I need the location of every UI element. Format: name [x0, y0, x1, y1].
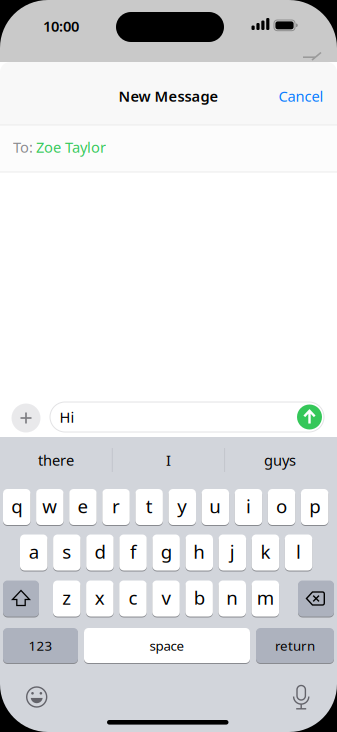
- staticText: f: [130, 539, 136, 564]
- staticText: 123: [28, 637, 52, 654]
- staticText: Hi: [59, 407, 74, 427]
- staticText: j: [230, 539, 235, 564]
- staticText: space: [149, 637, 184, 654]
- staticText: u: [209, 494, 221, 518]
- staticText: t: [146, 494, 153, 518]
- staticText: m: [257, 585, 274, 610]
- staticText: New Message: [118, 86, 218, 106]
- staticText: o: [276, 494, 287, 518]
- staticText: z: [62, 585, 71, 610]
- staticText: a: [29, 539, 39, 564]
- staticText: n: [226, 585, 238, 610]
- staticText: x: [95, 585, 105, 610]
- staticText: k: [260, 539, 270, 564]
- staticText: q: [11, 494, 22, 518]
- staticText: i: [246, 494, 251, 518]
- staticText: return: [275, 637, 315, 654]
- staticText: c: [128, 585, 137, 610]
- staticText: e: [77, 494, 88, 518]
- staticText: Zoe Taylor: [36, 137, 106, 157]
- staticText: w: [42, 494, 57, 518]
- staticText: I: [166, 450, 171, 470]
- staticText: s: [62, 539, 71, 564]
- staticText: there: [38, 450, 74, 470]
- staticText: r: [112, 494, 120, 518]
- staticText: h: [193, 539, 205, 564]
- staticText: v: [162, 585, 171, 610]
- staticText: To:: [13, 137, 33, 157]
- staticText: d: [94, 539, 105, 564]
- staticText: Cancel: [278, 86, 323, 106]
- staticText: g: [161, 539, 172, 564]
- staticText: guys: [264, 450, 296, 470]
- staticText: p: [309, 494, 320, 518]
- staticText: 10:00: [43, 16, 79, 36]
- staticText: y: [177, 494, 187, 518]
- staticText: l: [296, 539, 301, 564]
- staticText: b: [194, 585, 205, 610]
